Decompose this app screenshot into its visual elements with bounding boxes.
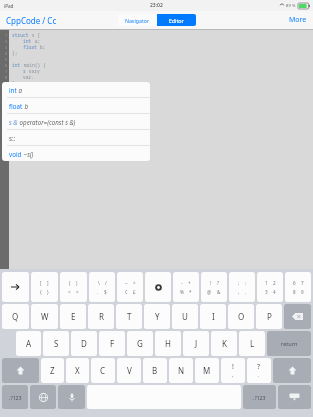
staticText: void (9, 150, 22, 158)
button[interactable]: 6 (285, 272, 311, 302)
staticText: 1 (265, 280, 268, 286)
button[interactable]: Navigator (118, 14, 157, 26)
staticText: W (41, 311, 49, 322)
button[interactable]: 1 (257, 272, 283, 302)
button[interactable]: R (88, 304, 114, 329)
button[interactable]: .?123 (2, 385, 28, 409)
button[interactable]: S (43, 331, 69, 356)
staticText: ^ (133, 280, 136, 286)
button[interactable]: Z (41, 358, 64, 383)
staticText: C (100, 365, 106, 376)
button[interactable]: ! (221, 358, 245, 383)
staticText: @ (207, 289, 212, 295)
button[interactable]: CppCode / Cc (0, 13, 63, 28)
staticText: 3 (265, 289, 268, 295)
button[interactable]: .?123 (243, 385, 276, 409)
button[interactable]: Y (144, 304, 170, 329)
button[interactable]: T (116, 304, 142, 329)
staticText: ~s() (22, 150, 34, 158)
button[interactable]: M (195, 358, 219, 383)
staticText: M (203, 365, 211, 376)
button[interactable]: - (173, 272, 199, 302)
button[interactable]: float (2, 98, 150, 113)
button[interactable]: ~ (117, 272, 143, 302)
button[interactable]: I (200, 304, 226, 329)
staticText: a; (32, 38, 41, 44)
button[interactable]: J (183, 331, 209, 356)
staticText: } (47, 289, 49, 295)
button[interactable]: Tab (2, 272, 29, 302)
staticText: 89 % (286, 3, 296, 9)
button[interactable]: return (267, 331, 311, 356)
button[interactable]: Backspace (284, 304, 311, 329)
staticText: s:: (9, 134, 16, 142)
button[interactable]: Dictation (58, 385, 85, 409)
button[interactable]: G (127, 331, 153, 356)
button[interactable]: Change keyboard (30, 385, 56, 409)
staticText: T (127, 311, 132, 322)
button[interactable]: Shift (273, 358, 311, 383)
button[interactable]: V (117, 358, 141, 383)
staticText: s (12, 68, 26, 74)
staticText: Y (155, 311, 160, 322)
button[interactable]: ; (229, 272, 255, 302)
button[interactable]: Q (2, 304, 29, 329)
staticText: operator=(const s &) (18, 118, 76, 126)
staticText: ; (238, 280, 240, 286)
button[interactable]: C (91, 358, 115, 383)
button[interactable]: int (2, 82, 150, 97)
button[interactable]: E (60, 304, 86, 329)
button[interactable]: U (172, 304, 198, 329)
staticText: More (289, 15, 307, 25)
button[interactable]: s & (2, 114, 150, 129)
staticText: - (181, 280, 183, 286)
button[interactable]: s:: (2, 130, 150, 145)
button[interactable]: ? (247, 358, 271, 383)
staticText: S (54, 338, 59, 349)
staticText: \ (98, 280, 100, 286)
staticText: int (12, 38, 32, 44)
button[interactable]: More (283, 13, 313, 27)
staticText: . (258, 372, 260, 379)
staticText: 6 (5, 63, 8, 68)
staticText: float (9, 102, 23, 110)
button[interactable] (145, 272, 171, 302)
staticText: N (178, 365, 185, 376)
staticText: ! (210, 280, 212, 286)
staticText: X (75, 365, 80, 376)
button[interactable]: W (31, 304, 58, 329)
staticText: Q (12, 311, 19, 322)
button[interactable]: Shift (2, 358, 39, 383)
button[interactable]: \ (89, 272, 115, 302)
button[interactable]: void (2, 146, 150, 161)
staticText: b; (37, 44, 46, 50)
button[interactable]: ! (201, 272, 227, 302)
button[interactable]: K (211, 331, 237, 356)
button[interactable]: O (228, 304, 254, 329)
staticText: a (17, 86, 23, 94)
staticText: I (212, 311, 215, 322)
button[interactable]: B (143, 358, 167, 383)
button[interactable]: Editor (157, 14, 196, 26)
staticText: / (105, 280, 107, 286)
staticText: & (217, 289, 221, 295)
button[interactable]: P (256, 304, 282, 329)
button[interactable]: N (169, 358, 193, 383)
button[interactable]: X (66, 358, 89, 383)
staticText: 7 (301, 280, 304, 286)
button[interactable]: [ (31, 272, 58, 302)
staticText: Navigator (125, 17, 150, 24)
button[interactable]: A (16, 331, 41, 356)
button[interactable]: L (239, 331, 265, 356)
button[interactable]: F (99, 331, 125, 356)
staticText: 9 (301, 289, 304, 295)
staticText: ? (257, 362, 261, 372)
button[interactable]: Hide keyboard (278, 385, 311, 409)
button[interactable]: D (71, 331, 97, 356)
staticText: ~ (125, 280, 128, 286)
staticText: K (222, 338, 227, 349)
staticText: * (189, 289, 192, 295)
button[interactable]: H (155, 331, 181, 356)
button[interactable]: ( (60, 272, 87, 302)
